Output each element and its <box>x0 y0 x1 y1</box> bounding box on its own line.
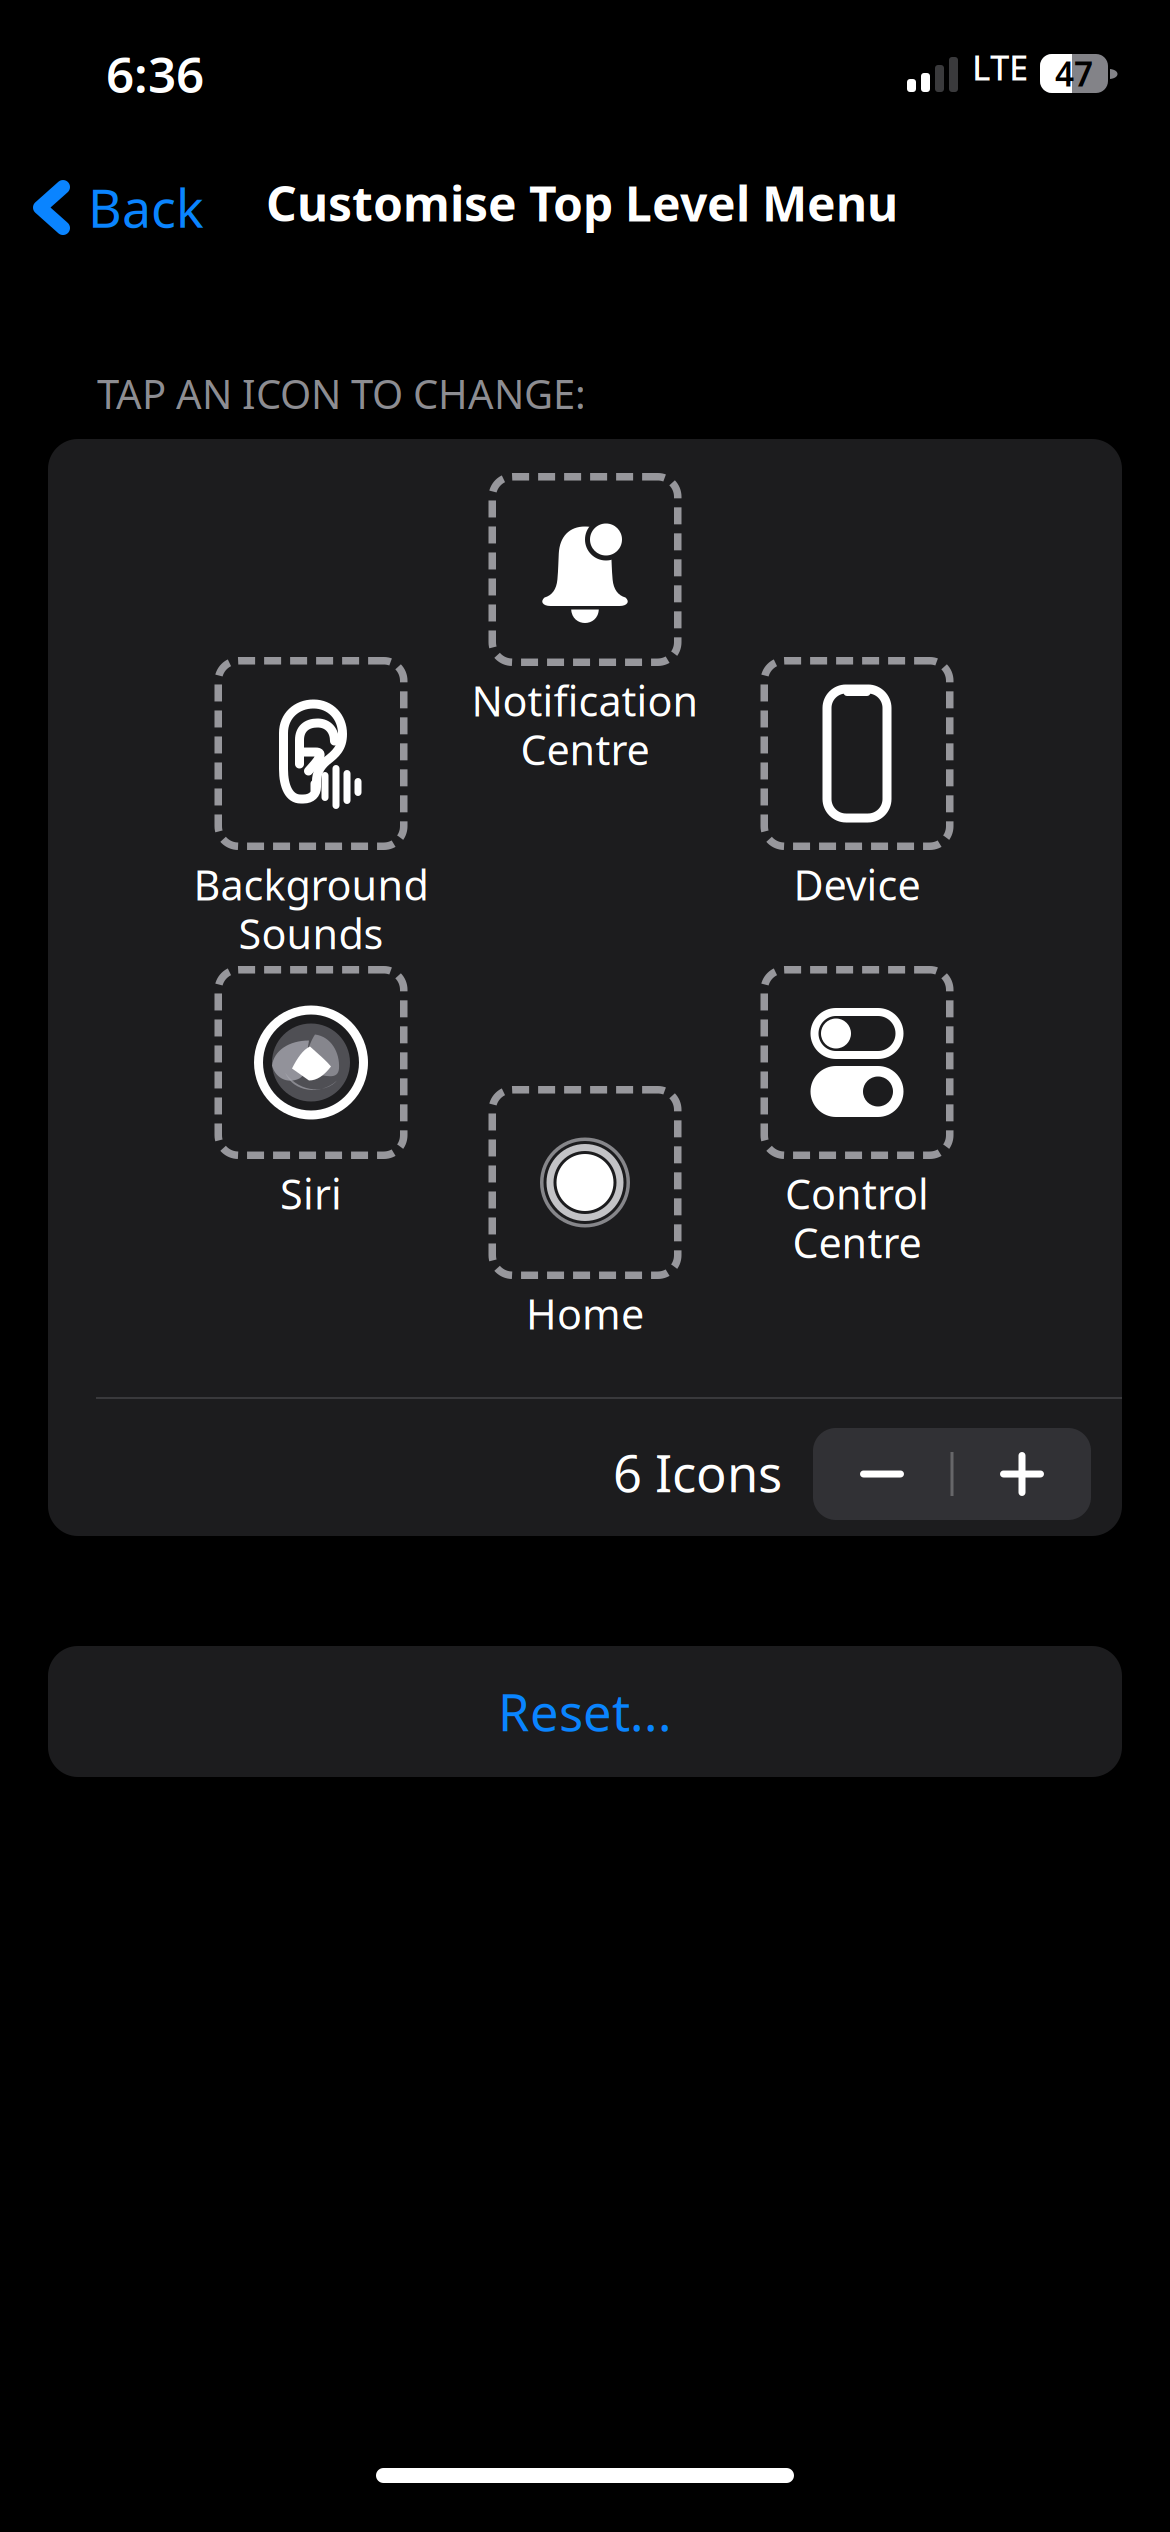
staticText: Notification <box>471 673 698 728</box>
button[interactable]: Increase number of icons <box>953 1428 1091 1520</box>
staticText: Reset... <box>498 1678 672 1745</box>
staticText: Centre <box>520 722 649 777</box>
staticText: Centre <box>792 1215 921 1270</box>
staticText: Device <box>793 857 920 912</box>
staticText: Siri <box>280 1166 342 1221</box>
staticText: Background <box>193 857 428 912</box>
staticText: Control <box>785 1166 929 1221</box>
staticText: Back <box>88 173 204 242</box>
button[interactable]: Background Sounds <box>161 657 461 961</box>
button[interactable]: Decrease number of icons <box>813 1428 951 1520</box>
staticText: Sounds <box>238 906 383 961</box>
button[interactable]: Notification Centre <box>435 473 735 777</box>
staticText: 6 Icons <box>613 1439 782 1506</box>
button[interactable]: Device <box>707 657 1007 912</box>
staticText: TAP AN ICON TO CHANGE: <box>97 367 586 420</box>
staticText: 47 <box>1055 51 1093 96</box>
staticText: LTE <box>972 44 1028 90</box>
button[interactable]: Back <box>0 159 204 256</box>
staticText: 6:36 <box>106 41 204 106</box>
button[interactable]: Reset... <box>48 1646 1122 1777</box>
button[interactable]: Control Centre <box>707 966 1007 1270</box>
staticText: Customise Top Level Menu <box>266 171 898 235</box>
button[interactable]: Home <box>435 1086 735 1341</box>
button[interactable]: Siri <box>161 966 461 1221</box>
staticText: Home <box>526 1286 644 1341</box>
